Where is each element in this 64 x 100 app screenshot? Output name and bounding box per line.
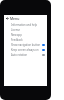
staticText: License (11, 28, 21, 32)
button[interactable]: License (4, 27, 47, 32)
staticText: Keep screen always on (11, 48, 39, 52)
staticText: Auto rotation (11, 53, 28, 57)
staticText: Information and help (11, 23, 38, 27)
button[interactable]: Keep screen always on (4, 47, 47, 52)
staticText: Show navigation button (11, 43, 41, 47)
button[interactable]: Feedback (4, 37, 47, 42)
button[interactable]: Show navigation button (4, 42, 47, 47)
button[interactable]: Back (4, 15, 10, 21)
staticText: Menu (10, 16, 20, 21)
button[interactable]: Auto rotation (4, 52, 47, 57)
staticText: Feedback (11, 38, 23, 42)
button[interactable]: New app (4, 32, 47, 37)
staticText: New app (11, 33, 22, 37)
button[interactable]: Information and help (4, 22, 47, 27)
